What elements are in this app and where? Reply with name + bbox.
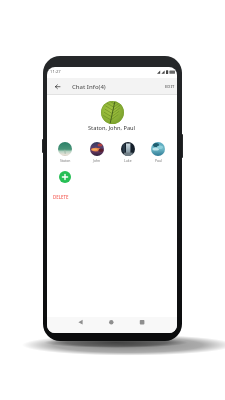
button[interactable] (139, 319, 146, 326)
staticText: Staton, John, Paul (88, 124, 136, 132)
button[interactable] (108, 319, 115, 326)
button[interactable]: DELETE (53, 194, 69, 200)
staticText: Luke (124, 158, 132, 163)
button[interactable] (77, 319, 85, 326)
button[interactable]: Staton (53, 142, 77, 163)
button[interactable]: John (85, 142, 109, 163)
button[interactable] (59, 171, 71, 183)
staticText: John (93, 158, 101, 163)
staticText: Chat Info(4) (72, 83, 106, 91)
button[interactable]: EDIT (165, 84, 175, 90)
button[interactable] (53, 82, 62, 91)
button[interactable]: Luke (116, 142, 140, 163)
button[interactable]: Paul (146, 142, 170, 163)
staticText: Staton (60, 158, 71, 163)
staticText: 11:27 (50, 69, 61, 75)
staticText: Paul (155, 158, 162, 163)
